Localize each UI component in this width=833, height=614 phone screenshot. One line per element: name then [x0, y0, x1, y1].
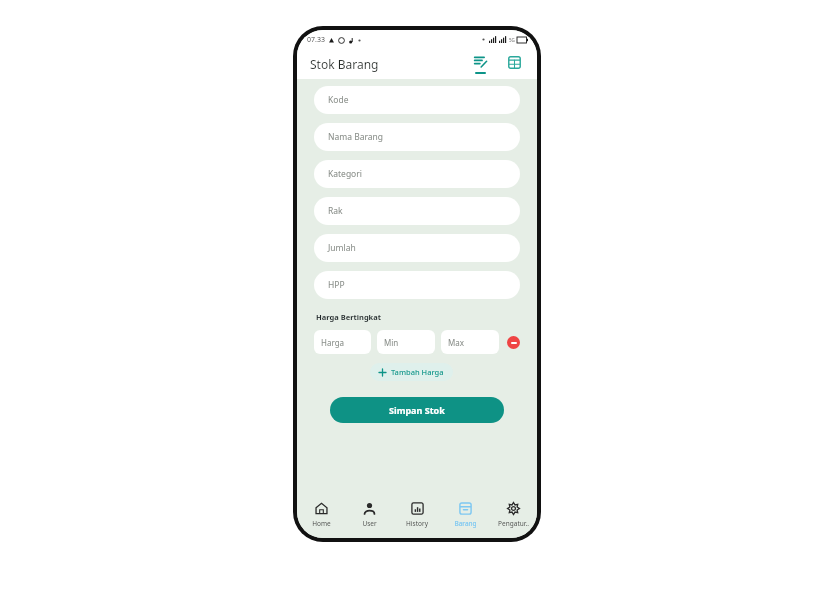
button[interactable]: Kode: [314, 86, 520, 114]
button[interactable]: Pengatur..: [489, 494, 537, 538]
button[interactable]: Form input: [467, 50, 493, 78]
staticText: 07.33: [307, 35, 325, 45]
button[interactable]: User: [345, 494, 393, 538]
button[interactable]: Min: [377, 330, 435, 354]
staticText: Home: [312, 519, 331, 528]
button[interactable]: History: [393, 494, 441, 538]
staticText: User: [362, 519, 377, 528]
button[interactable]: Nama Barang: [314, 123, 520, 151]
staticText: 5G: [509, 37, 515, 43]
button[interactable]: Table view: [503, 50, 525, 78]
staticText: Barang: [454, 519, 477, 528]
staticText: HPP: [328, 279, 345, 291]
button[interactable]: Tambah Harga: [370, 363, 453, 381]
button[interactable]: Rak: [314, 197, 520, 225]
staticText: Simpan Stok: [389, 404, 445, 416]
button[interactable]: Barang: [441, 494, 489, 538]
staticText: Harga Bertingkat: [316, 312, 382, 322]
button[interactable]: Simpan Stok: [330, 397, 504, 423]
staticText: Jumlah: [328, 242, 356, 254]
staticText: Tambah Harga: [391, 367, 444, 377]
button[interactable]: Harga: [314, 330, 371, 354]
button[interactable]: Kategori: [314, 160, 520, 188]
staticText: Nama Barang: [328, 131, 384, 143]
button[interactable]: Max: [441, 330, 499, 354]
staticText: Stok Barang: [310, 56, 379, 72]
staticText: Harga: [321, 337, 345, 348]
button[interactable]: Remove price tier: [507, 336, 520, 349]
button[interactable]: Home: [297, 494, 345, 538]
staticText: Kode: [328, 94, 349, 106]
staticText: Pengatur..: [498, 519, 529, 528]
staticText: Max: [448, 337, 464, 348]
staticText: Rak: [328, 205, 343, 217]
staticText: History: [406, 519, 428, 528]
staticText: Kategori: [328, 168, 362, 180]
staticText: Min: [384, 337, 399, 348]
button[interactable]: Jumlah: [314, 234, 520, 262]
button[interactable]: HPP: [314, 271, 520, 299]
